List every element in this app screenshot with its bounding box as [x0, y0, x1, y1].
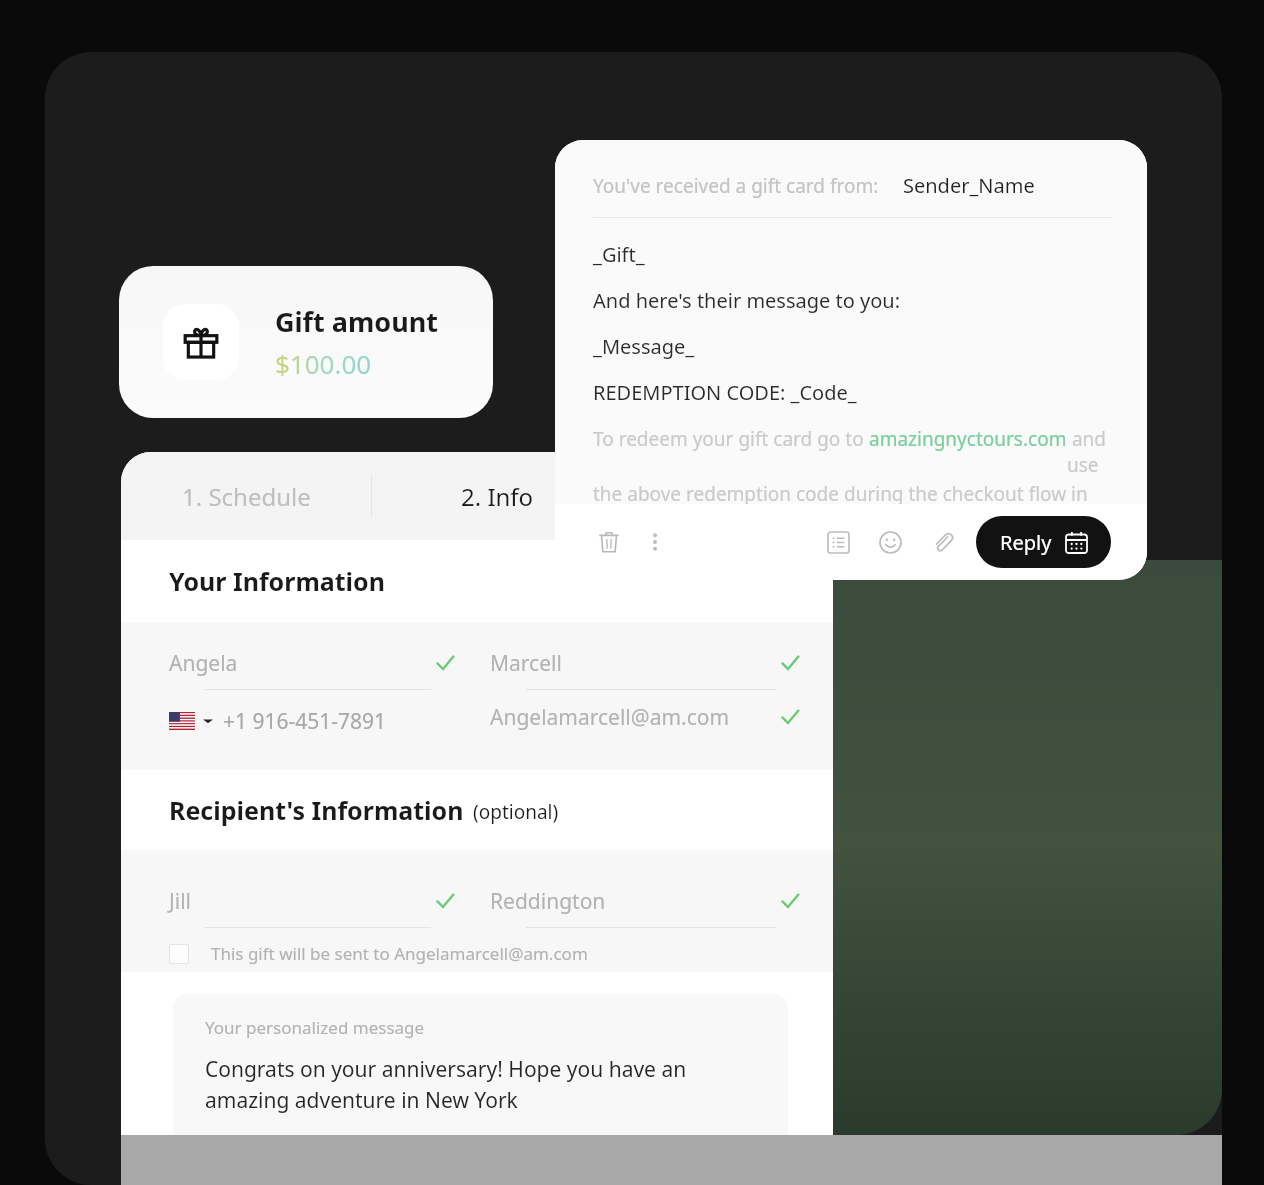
staticText: Recipient's Information	[169, 793, 464, 827]
button[interactable]: Delete	[589, 522, 629, 562]
staticText: Marcell	[490, 649, 562, 678]
staticText: Reply	[1000, 529, 1052, 556]
button[interactable]: Attach file	[922, 522, 962, 562]
button[interactable]: 1. Schedule	[121, 452, 371, 540]
button[interactable]: Marcell	[490, 644, 800, 690]
staticText: Sender_Name	[903, 172, 1035, 199]
staticText: And here's their message to you:	[593, 287, 901, 314]
button[interactable]: Reply	[976, 516, 1111, 568]
button[interactable]: More options	[635, 522, 675, 562]
button[interactable]: 2. Info	[372, 452, 622, 540]
button[interactable]: Jill	[169, 882, 455, 928]
staticText: Angela	[169, 649, 238, 678]
staticText: $100.00	[275, 346, 372, 381]
button[interactable]: Reddington	[490, 882, 800, 928]
staticText: (optional)	[473, 799, 559, 825]
button[interactable]: Insert emoji	[870, 522, 910, 562]
staticText: To redeem your gift card go to	[593, 426, 869, 452]
staticText: Your Information	[169, 564, 385, 598]
staticText: the above redemption code during the che…	[593, 481, 1113, 504]
staticText: This gift will be sent to Angelamarcell@…	[211, 942, 588, 965]
button[interactable]: amazingnyctours.com	[869, 426, 1067, 452]
button[interactable]: Gift amount	[119, 266, 493, 418]
staticText: and use	[1067, 426, 1113, 478]
staticText: Jill	[169, 887, 191, 916]
staticText: Congrats on your anniversary! Hope you h…	[205, 1055, 687, 1114]
staticText: +1 916-451-7891	[223, 707, 387, 736]
staticText: Your personalized message	[205, 1016, 425, 1039]
button[interactable]: Your personalized message	[173, 994, 788, 1135]
staticText: Angelamarcell@am.com	[490, 703, 730, 732]
button[interactable]: +1 916-451-7891	[169, 698, 455, 744]
button[interactable]: Angelamarcell@am.com	[490, 698, 800, 744]
button[interactable]: This gift will be sent to Angelamarcell@…	[169, 942, 588, 965]
staticText: 1. Schedule	[182, 480, 311, 513]
staticText: You've received a gift card from:	[593, 173, 879, 199]
staticText: _Gift_	[593, 241, 645, 268]
button[interactable]: Angela	[169, 644, 455, 690]
staticText: REDEMPTION CODE: _Code_	[593, 379, 857, 406]
staticText: Gift amount	[275, 303, 438, 340]
button[interactable]: Format	[818, 522, 858, 562]
staticText: _Message_	[593, 333, 695, 360]
staticText: Reddington	[490, 887, 606, 916]
staticText: 2. Info	[461, 480, 534, 513]
